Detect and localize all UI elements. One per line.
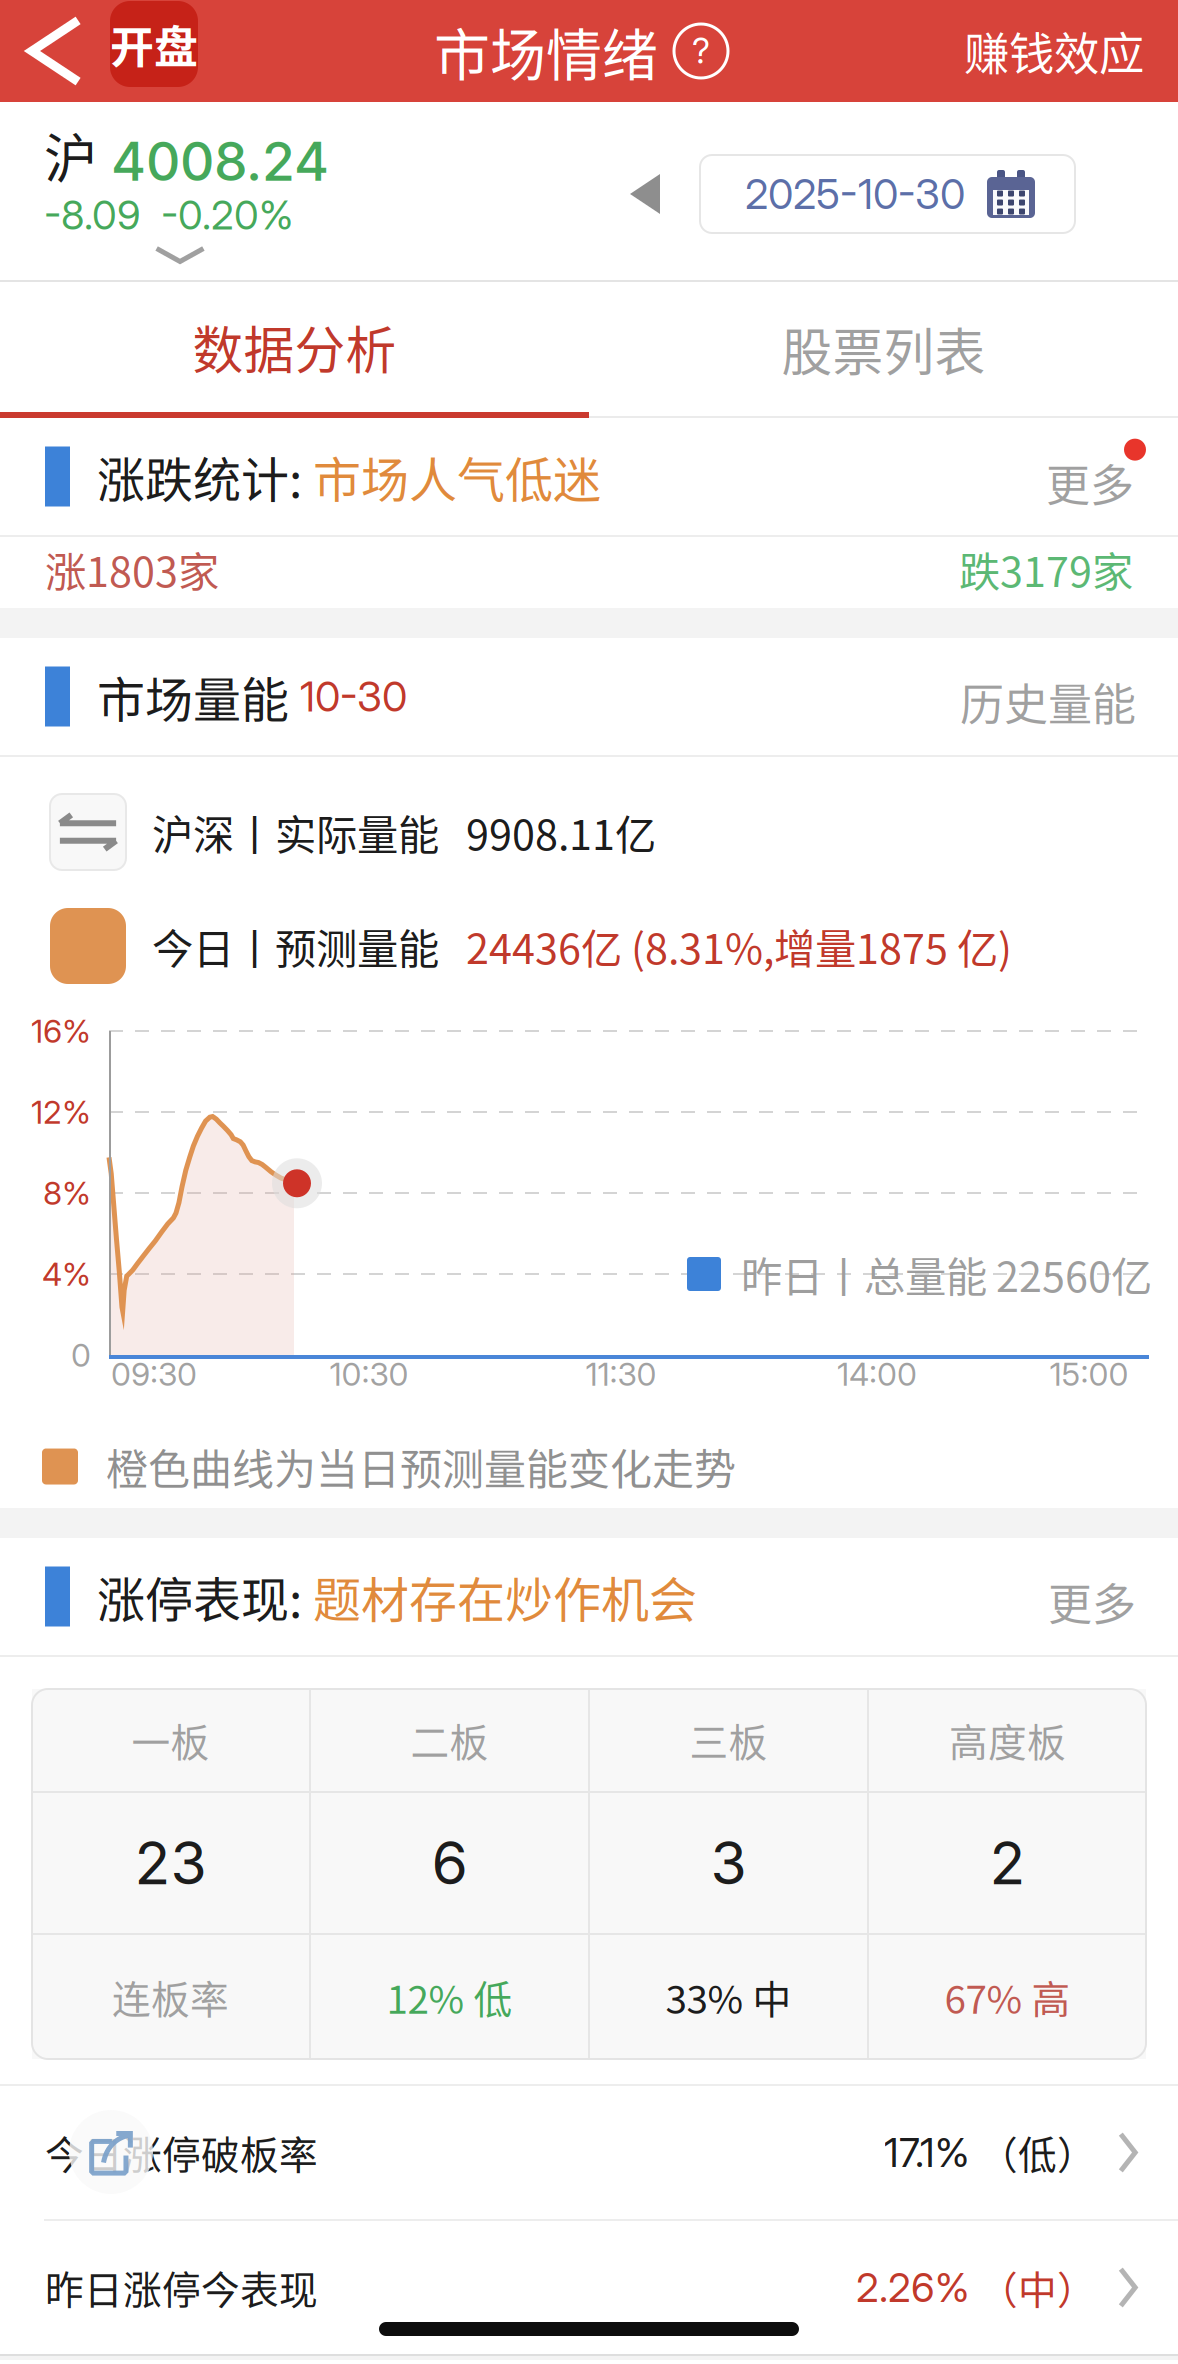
button[interactable]: 赚钱效应 — [964, 18, 1178, 84]
staticText: 24436亿 (8.31%,增量1875 亿) — [466, 916, 1012, 976]
staticText: （低） — [979, 2124, 1096, 2180]
staticText: （中） — [979, 2259, 1096, 2315]
staticText: 16% — [31, 1012, 91, 1050]
staticText: 连板率 — [112, 1969, 229, 2025]
staticText: 67% 高 — [944, 1969, 1070, 2025]
button[interactable]: 股票列表 — [589, 282, 1178, 418]
staticText: 12% — [31, 1093, 91, 1131]
staticText: 今日涨停破板率 — [45, 2124, 318, 2180]
staticText: 沪深丨实际量能 — [152, 802, 466, 862]
staticText: 涨跌统计: — [97, 442, 313, 511]
button[interactable]: 更多 — [1048, 1560, 1146, 1633]
button[interactable]: 历史量能 — [960, 660, 1146, 733]
button[interactable]: 沪 — [0, 122, 329, 268]
staticText: 高度板 — [949, 1712, 1066, 1768]
staticText: 12% 低 — [386, 1969, 512, 2025]
staticText: 三板 — [689, 1712, 767, 1768]
staticText: ? — [692, 30, 710, 72]
staticText: 2.26% — [856, 2263, 969, 2312]
staticText: 涨1803家 — [45, 539, 219, 599]
staticText: 一板 — [131, 1712, 209, 1768]
staticText: 开盘 — [110, 12, 198, 76]
button[interactable]: Share — [69, 2110, 153, 2194]
staticText: 11:30 — [585, 1355, 656, 1393]
staticText: 涨停表现: — [97, 1562, 313, 1631]
staticText: 4008.24 — [111, 129, 329, 194]
staticText: 2025-10-30 — [745, 169, 965, 219]
staticText: 10:30 — [329, 1355, 408, 1393]
staticText: -8.09 -0.20% — [44, 191, 293, 239]
staticText: 23 — [134, 1827, 206, 1898]
staticText: 6 — [431, 1827, 467, 1898]
staticText: 15:00 — [1049, 1355, 1128, 1393]
button[interactable]: 数据分析 — [0, 282, 589, 418]
staticText: 二板 — [410, 1712, 488, 1768]
staticText: 更多 — [1046, 451, 1134, 514]
staticText: 0 — [71, 1336, 91, 1374]
button[interactable]: 今日涨停破板率 — [0, 2086, 1178, 2219]
staticText: 橙色曲线为当日预测量能变化走势 — [106, 1436, 736, 1497]
button[interactable]: 2025-10-30 — [700, 155, 1075, 233]
staticText: 股票列表 — [781, 312, 985, 386]
staticText: 2 — [989, 1827, 1025, 1898]
staticText: 市场人气低迷 — [313, 442, 601, 511]
staticText: 沪 — [44, 116, 97, 194]
staticText: 14:00 — [837, 1355, 917, 1393]
staticText: 昨日涨停今表现 — [45, 2259, 318, 2315]
staticText: 4% — [42, 1255, 91, 1293]
staticText: 赚钱效应 — [964, 18, 1144, 84]
staticText: 今日丨预测量能 — [152, 916, 466, 976]
staticText: 市场情绪 — [434, 10, 658, 92]
staticText: 3 — [710, 1827, 746, 1898]
staticText: 昨日丨总量能 22560亿 — [741, 1244, 1152, 1304]
staticText: 09:30 — [111, 1355, 197, 1393]
staticText: 数据分析 — [192, 310, 396, 384]
button[interactable]: 更多 — [1046, 439, 1146, 514]
staticText: 33% 中 — [665, 1969, 791, 2025]
staticText: 更多 — [1048, 1570, 1136, 1633]
button[interactable]: Help — [674, 24, 728, 78]
staticText: 9908.11亿 — [466, 802, 656, 862]
staticText: 题材存在炒作机会 — [313, 1562, 697, 1631]
button[interactable]: Previous day — [630, 122, 660, 270]
staticText: 17.1% — [884, 2128, 969, 2177]
staticText: 市场量能 — [97, 662, 300, 731]
staticText: 历史量能 — [960, 670, 1136, 733]
button[interactable]: 昨日涨停今表现 — [0, 2221, 1178, 2354]
staticText: 10-30 — [300, 671, 407, 721]
staticText: 8% — [43, 1174, 91, 1212]
staticText: 跌3179家 — [959, 539, 1133, 599]
button[interactable]: Back — [0, 0, 110, 102]
